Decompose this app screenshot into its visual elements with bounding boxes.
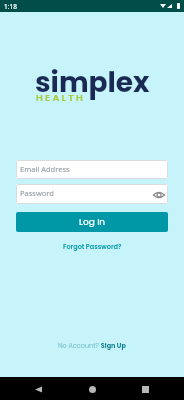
button[interactable]: Forgot Password? [63,242,122,251]
staticText: simplex [35,63,150,102]
staticText: Email Address [20,164,70,174]
button[interactable]: Back [28,379,48,399]
button[interactable]: No Account? Sign Up [58,341,126,350]
button[interactable]: Show password [152,188,165,201]
button[interactable]: Password [16,184,168,204]
button[interactable]: Log In [16,212,168,232]
staticText: HEALTH [36,91,86,104]
button[interactable]: Home [82,379,102,399]
button[interactable]: Recents [135,379,155,399]
staticText: Password [20,188,54,198]
staticText: 1:18 [4,2,17,11]
button[interactable]: Email Address [16,160,168,179]
staticText: Log In [79,216,106,229]
staticText: No Account? Sign Up [58,341,126,350]
